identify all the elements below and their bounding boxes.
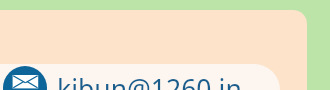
button[interactable]: Mail account avatar [0, 66, 280, 90]
other: Mail account avatar [3, 66, 47, 90]
staticText: kibun@1260.in [57, 71, 242, 90]
